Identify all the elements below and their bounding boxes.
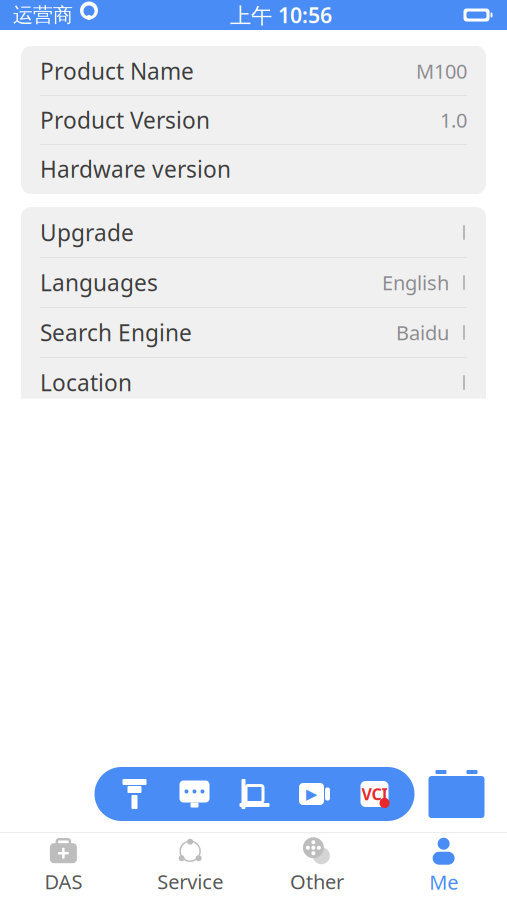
- staticText: Me: [429, 869, 458, 895]
- button[interactable]: DAS: [0, 833, 127, 900]
- staticText: Languages: [40, 267, 158, 297]
- staticText: Baidu: [396, 319, 449, 346]
- button[interactable]: Flashlight: [104, 767, 164, 821]
- staticText: 上午 10:56: [230, 1, 332, 29]
- staticText: VCI: [361, 783, 387, 805]
- staticText: DAS: [44, 868, 82, 895]
- button[interactable]: Me: [380, 833, 507, 900]
- staticText: Hardware version: [40, 154, 231, 184]
- staticText: Other: [290, 868, 344, 895]
- staticText: Product Name: [40, 56, 194, 86]
- button[interactable]: Messages: [164, 767, 224, 821]
- staticText: M100: [416, 58, 467, 84]
- button[interactable]: Other: [253, 833, 380, 900]
- button[interactable]: VCI: [344, 767, 404, 821]
- staticText: Service: [157, 868, 223, 895]
- staticText: Location: [40, 367, 132, 397]
- button[interactable]: Battery: [414, 769, 485, 819]
- button[interactable]: Screenshot: [224, 767, 284, 821]
- staticText: Product Version: [40, 105, 210, 135]
- button[interactable]: Record: [284, 767, 344, 821]
- button[interactable]: Location: [21, 358, 486, 407]
- staticText: ▶: [306, 786, 317, 802]
- staticText: 运营商: [13, 3, 73, 27]
- button[interactable]: Upgrade: [21, 208, 486, 257]
- staticText: Upgrade: [40, 217, 134, 247]
- button[interactable]: Service: [127, 833, 254, 900]
- button[interactable]: Search Engine: [21, 308, 486, 357]
- staticText: 1.0: [440, 107, 467, 133]
- staticText: English: [382, 269, 449, 296]
- staticText: Search Engine: [40, 317, 192, 347]
- button[interactable]: Languages: [21, 258, 486, 307]
